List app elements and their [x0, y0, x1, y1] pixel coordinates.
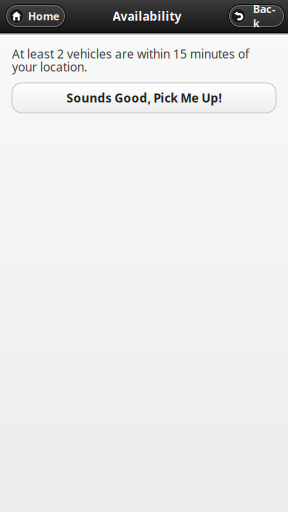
button[interactable]: Home: [5, 4, 66, 28]
button[interactable]: Back: [228, 4, 285, 28]
staticText: Sounds Good, Pick Me Up!: [66, 90, 221, 106]
staticText: your location.: [12, 59, 87, 75]
staticText: Back: [253, 2, 275, 30]
staticText: Availability: [112, 8, 181, 24]
staticText: At least 2 vehicles are within 15 minute…: [12, 46, 249, 62]
staticText: Home: [28, 9, 59, 23]
button[interactable]: Sounds Good, Pick Me Up!: [12, 83, 276, 113]
